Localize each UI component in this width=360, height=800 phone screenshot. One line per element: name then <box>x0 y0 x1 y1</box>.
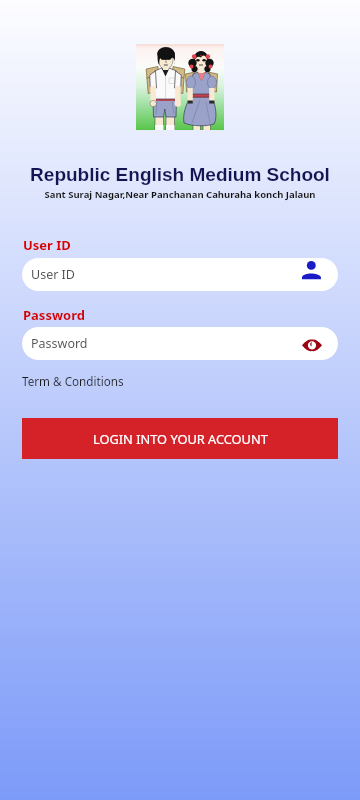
button[interactable]: User ID <box>22 258 338 291</box>
staticText: Sant Suraj Nagar,Near Panchanan Cahuraha… <box>0 188 360 201</box>
staticText: LOGIN INTO YOUR ACCOUNT <box>93 430 268 447</box>
staticText: User ID <box>23 236 71 254</box>
button[interactable]: Term & Conditions <box>22 373 124 389</box>
other: Show password <box>302 327 322 360</box>
button[interactable]: Password <box>22 327 338 360</box>
other: User <box>302 258 321 291</box>
button[interactable]: LOGIN INTO YOUR ACCOUNT <box>22 418 338 459</box>
staticText: Password <box>31 335 302 352</box>
staticText: Republic English Medium School <box>0 164 360 185</box>
staticText: Password <box>23 306 85 324</box>
staticText: User ID <box>31 266 302 283</box>
